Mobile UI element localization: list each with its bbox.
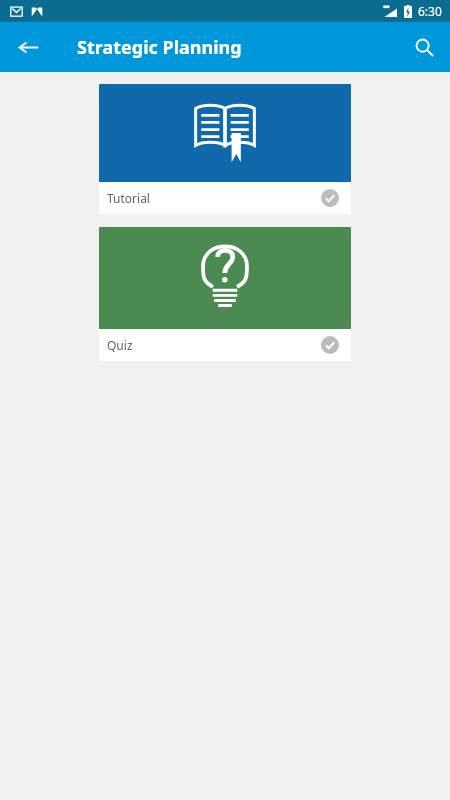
button[interactable]: Completed (319, 187, 341, 209)
button[interactable]: Search (404, 27, 444, 67)
staticText: 6:30 (418, 3, 442, 19)
staticText: Tutorial (107, 190, 150, 206)
button[interactable]: Completed (319, 334, 341, 356)
button[interactable]: Back (8, 27, 48, 67)
staticText: Strategic Planning (77, 35, 242, 60)
button[interactable]: Quiz (99, 227, 351, 361)
staticText: Quiz (107, 337, 133, 353)
button[interactable]: Tutorial (99, 84, 351, 214)
